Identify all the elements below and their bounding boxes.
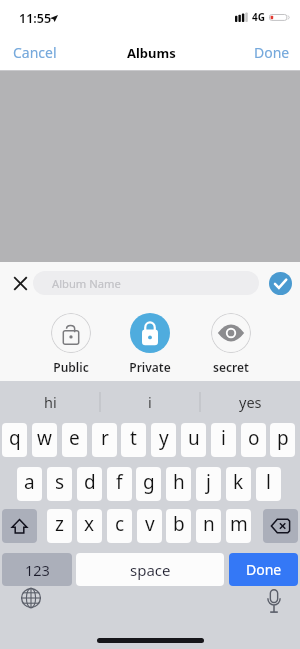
staticText: y bbox=[159, 425, 169, 451]
staticText: s bbox=[55, 469, 65, 495]
staticText: r bbox=[101, 425, 109, 451]
staticText: o bbox=[248, 425, 260, 451]
button[interactable]: g bbox=[136, 467, 161, 501]
staticText: q bbox=[9, 425, 21, 451]
staticText: x bbox=[84, 511, 95, 537]
button[interactable]: y bbox=[151, 423, 176, 457]
staticText: h bbox=[173, 469, 185, 495]
button[interactable]: Change keyboard bbox=[20, 587, 42, 609]
button[interactable]: w bbox=[32, 423, 57, 457]
staticText: a bbox=[24, 469, 35, 495]
button[interactable]: x bbox=[77, 509, 102, 543]
staticText: yes bbox=[239, 392, 262, 412]
staticText: e bbox=[69, 425, 80, 451]
button[interactable]: 123 bbox=[2, 553, 72, 586]
button[interactable]: yes bbox=[200, 381, 300, 423]
staticText: i bbox=[221, 425, 226, 451]
button[interactable]: e bbox=[62, 423, 87, 457]
staticText: 123 bbox=[25, 560, 50, 580]
button[interactable]: o bbox=[241, 423, 266, 457]
staticText: Done bbox=[254, 43, 290, 62]
staticText: m bbox=[230, 511, 248, 537]
staticText: p bbox=[277, 425, 289, 451]
button[interactable]: Close bbox=[9, 272, 32, 295]
button[interactable]: Backspace bbox=[263, 509, 298, 543]
button[interactable]: Done bbox=[229, 553, 298, 586]
button[interactable]: t bbox=[121, 423, 146, 457]
button[interactable]: c bbox=[107, 509, 132, 543]
button[interactable]: a bbox=[17, 467, 42, 501]
staticText: d bbox=[84, 469, 96, 495]
button[interactable]: Shift bbox=[2, 509, 37, 543]
button[interactable]: d bbox=[77, 467, 102, 501]
button[interactable]: Done bbox=[248, 37, 296, 68]
staticText: hi bbox=[44, 392, 57, 412]
button[interactable]: Confirm bbox=[269, 272, 292, 295]
button[interactable]: k bbox=[226, 467, 251, 501]
button[interactable]: Public bbox=[31, 313, 111, 375]
button[interactable]: Private bbox=[110, 313, 190, 375]
staticText: t bbox=[130, 425, 137, 451]
button[interactable]: l bbox=[256, 467, 281, 501]
staticText: i bbox=[148, 392, 152, 412]
button[interactable]: n bbox=[196, 509, 221, 543]
button[interactable]: z bbox=[47, 509, 72, 543]
staticText: k bbox=[233, 469, 244, 495]
button[interactable]: Dictate bbox=[263, 585, 285, 607]
staticText: c bbox=[115, 511, 125, 537]
button[interactable]: p bbox=[270, 423, 295, 457]
staticText: n bbox=[203, 511, 215, 537]
button[interactable]: i bbox=[211, 423, 236, 457]
staticText: Public bbox=[53, 359, 89, 375]
staticText: f bbox=[116, 469, 123, 495]
button[interactable]: Album Name bbox=[33, 271, 259, 295]
staticText: Private bbox=[129, 359, 171, 375]
button[interactable]: hi bbox=[0, 381, 100, 423]
staticText: Cancel bbox=[13, 43, 57, 62]
button[interactable]: m bbox=[226, 509, 251, 543]
staticText: v bbox=[145, 511, 155, 537]
staticText: w bbox=[37, 425, 52, 451]
staticText: Done bbox=[246, 560, 282, 579]
button[interactable]: j bbox=[196, 467, 221, 501]
staticText: g bbox=[143, 469, 155, 495]
staticText: space bbox=[130, 560, 171, 580]
button[interactable]: h bbox=[166, 467, 191, 501]
button[interactable]: s bbox=[47, 467, 72, 501]
button[interactable]: v bbox=[137, 509, 162, 543]
staticText: z bbox=[55, 511, 64, 537]
staticText: 11:55 bbox=[19, 10, 52, 27]
staticText: Albums bbox=[127, 44, 176, 62]
button[interactable]: r bbox=[92, 423, 117, 457]
button[interactable]: u bbox=[181, 423, 206, 457]
staticText: 4G bbox=[252, 10, 265, 24]
button[interactable]: f bbox=[107, 467, 132, 501]
button[interactable]: secret bbox=[191, 313, 271, 375]
staticText: u bbox=[188, 425, 200, 451]
button[interactable]: Cancel bbox=[7, 37, 63, 68]
button[interactable]: b bbox=[166, 509, 191, 543]
staticText: l bbox=[266, 469, 271, 495]
staticText: b bbox=[173, 511, 185, 537]
staticText: j bbox=[206, 469, 211, 495]
staticText: Album Name bbox=[52, 276, 121, 291]
button[interactable]: space bbox=[76, 553, 224, 586]
button[interactable]: i bbox=[100, 381, 200, 423]
button[interactable]: q bbox=[2, 423, 27, 457]
staticText: secret bbox=[213, 359, 249, 375]
